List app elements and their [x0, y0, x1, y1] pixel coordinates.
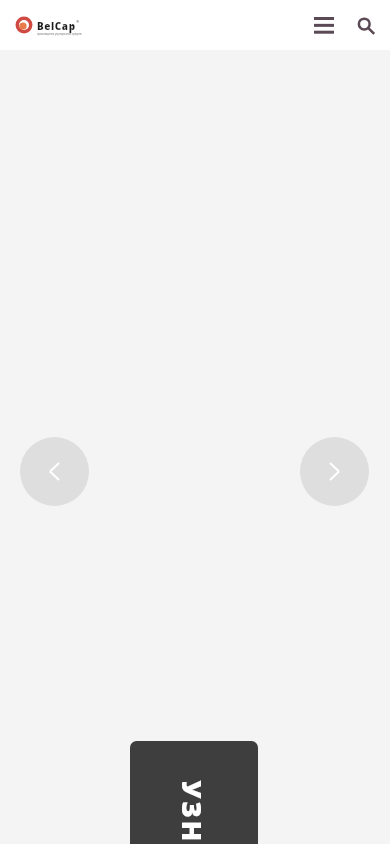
staticText: ®: [76, 19, 80, 24]
button[interactable]: УЗНАТЬ БОЛЬШЕ: [130, 741, 258, 844]
button[interactable]: Menu: [304, 5, 344, 45]
staticText: УЗНАТЬ БОЛЬШЕ: [174, 781, 210, 844]
staticText: производство укупорочных средств: [37, 32, 82, 35]
button[interactable]: Search: [344, 5, 384, 45]
staticText: BelCap: [37, 19, 76, 32]
button[interactable]: BelCap: [14, 15, 82, 35]
button[interactable]: Previous slide: [20, 437, 89, 506]
button[interactable]: Next slide: [300, 437, 369, 506]
